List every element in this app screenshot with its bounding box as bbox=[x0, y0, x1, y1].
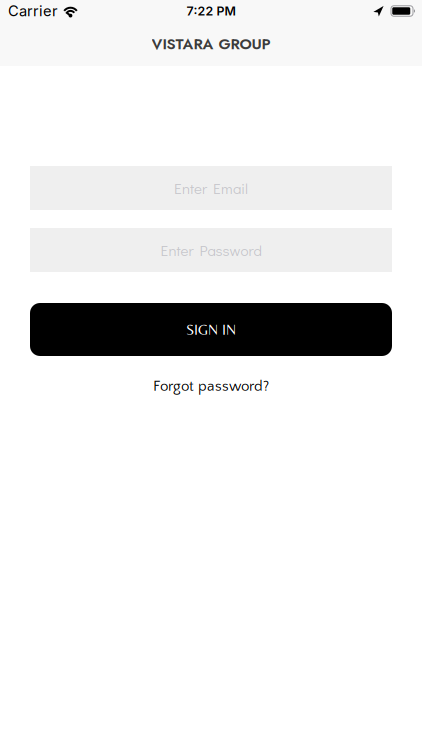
staticText: Forgot password? bbox=[153, 378, 269, 395]
staticText: VISTARA GROUP bbox=[151, 33, 270, 55]
button[interactable]: Enter Password bbox=[30, 228, 392, 272]
button[interactable]: SIGN IN bbox=[30, 303, 392, 356]
button[interactable]: Enter Email bbox=[30, 166, 392, 210]
staticText: 7:22 PM bbox=[186, 3, 235, 18]
button[interactable]: Forgot password? bbox=[153, 378, 269, 395]
staticText: Enter Email bbox=[174, 178, 248, 198]
staticText: SIGN IN bbox=[186, 321, 236, 338]
staticText: Carrier bbox=[8, 2, 58, 20]
staticText: Enter Password bbox=[160, 240, 261, 260]
